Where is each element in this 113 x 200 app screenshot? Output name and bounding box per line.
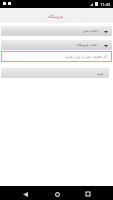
staticText: کد تخفیف خود را وارد نمایید: [65, 54, 107, 59]
button[interactable]: کد تخفیف خود را وارد نمایید: [1, 51, 112, 62]
button[interactable]: انتخاب شهر: [1, 26, 112, 36]
button[interactable]: Back: [18, 187, 32, 200]
button[interactable]: ثبت: [1, 68, 109, 78]
button[interactable]: Recents: [81, 187, 95, 200]
staticText: 11:33: [100, 2, 111, 7]
staticText: انتخاب شهر: [83, 29, 98, 33]
staticText: انتخاب فروشگاه: [77, 43, 98, 47]
button[interactable]: Home: [50, 187, 64, 200]
staticText: ثبت: [97, 71, 104, 76]
staticText: فروشگاه: [48, 14, 63, 19]
button[interactable]: انتخاب فروشگاه: [1, 40, 112, 50]
